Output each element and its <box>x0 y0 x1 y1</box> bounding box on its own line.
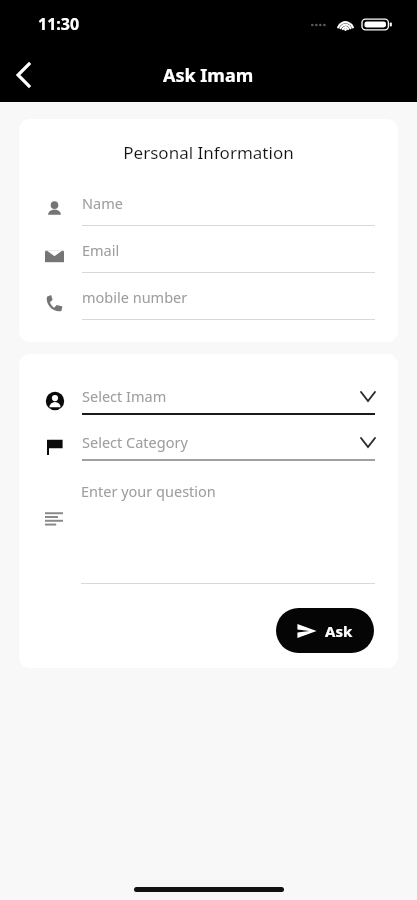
staticText: Email <box>82 240 375 260</box>
button[interactable]: Email <box>19 233 398 280</box>
staticText: mobile number <box>82 287 375 307</box>
button[interactable]: Select Category <box>19 424 398 469</box>
staticText: Name <box>82 193 375 213</box>
button[interactable]: Back <box>0 52 46 98</box>
staticText: Ask Imam <box>163 63 254 88</box>
button[interactable]: Select Imam <box>19 378 398 423</box>
button[interactable]: Enter your question <box>19 474 398 584</box>
button[interactable]: Name <box>19 186 398 233</box>
staticText: Ask <box>325 621 353 641</box>
staticText: Select Imam <box>82 386 361 406</box>
button[interactable]: Ask <box>276 608 374 653</box>
staticText: Select Category <box>82 432 361 452</box>
staticText: Enter your question <box>81 481 375 501</box>
staticText: 11:30 <box>38 13 80 35</box>
staticText: Personal Information <box>19 141 398 164</box>
button[interactable]: mobile number <box>19 280 398 327</box>
